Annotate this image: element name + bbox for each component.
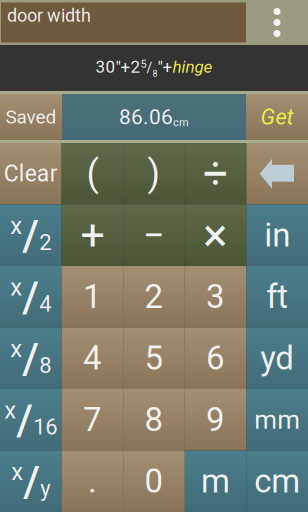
button[interactable]: . (62, 450, 123, 512)
staticText: ) (147, 153, 160, 195)
button[interactable]: x/4 (0, 266, 62, 327)
button[interactable]: 4 (62, 327, 123, 389)
button[interactable]: door width (0, 0, 246, 44)
staticText: mm (254, 404, 300, 435)
staticText: yd (260, 339, 294, 378)
staticText: x/2 (10, 211, 51, 260)
staticText: 6 (206, 339, 225, 378)
button[interactable]: Clear (0, 143, 62, 204)
staticText: ÷ (203, 148, 228, 200)
staticText: + (80, 210, 104, 260)
staticText: m (201, 462, 230, 501)
button[interactable]: + (62, 204, 123, 266)
staticText: 3 (206, 277, 225, 316)
staticText: 1 (83, 277, 102, 316)
button[interactable]: × (185, 204, 246, 266)
staticText: Saved (5, 106, 56, 128)
staticText: Get (260, 104, 293, 130)
staticText: Clear (4, 160, 58, 187)
button[interactable]: mm (246, 389, 308, 450)
staticText: 0 (144, 462, 163, 501)
staticText: × (203, 208, 228, 262)
button[interactable]: x/2 (0, 204, 62, 266)
button[interactable]: 2 (123, 266, 185, 327)
button[interactable]: Saved (0, 94, 62, 140)
button[interactable]: ft (246, 266, 308, 327)
staticText: ( (86, 153, 98, 195)
button[interactable]: 3 (185, 266, 246, 327)
button[interactable]: 0 (123, 450, 185, 512)
staticText: 8 (144, 400, 163, 439)
staticText: 5 (144, 339, 163, 378)
button[interactable]: 8 (123, 389, 185, 450)
button[interactable]: Get (246, 94, 308, 140)
button[interactable]: Backspace (246, 143, 308, 204)
button[interactable]: ( (62, 143, 123, 204)
staticText: x/y (11, 457, 50, 506)
staticText: 30"+25/8"+ (95, 57, 172, 79)
staticText: in (264, 216, 290, 255)
button[interactable]: ) (123, 143, 185, 204)
staticText: x/4 (10, 272, 51, 321)
button[interactable]: x/16 (0, 389, 62, 450)
button[interactable]: More options (246, 0, 308, 45)
staticText: door width (7, 5, 91, 26)
staticText: hinge (172, 57, 212, 77)
button[interactable]: m (185, 450, 246, 512)
button[interactable]: x/8 (0, 327, 62, 389)
staticText: 86.06cm (119, 105, 189, 129)
button[interactable]: − (123, 204, 185, 266)
button[interactable]: cm (246, 450, 308, 512)
staticText: . (88, 462, 97, 501)
button[interactable]: ÷ (185, 143, 246, 204)
staticText: x/8 (10, 334, 51, 383)
staticText: x/16 (4, 395, 57, 444)
staticText: 4 (83, 339, 102, 378)
staticText: ft (266, 277, 288, 316)
staticText: 2 (144, 277, 163, 316)
staticText: − (143, 213, 165, 257)
button[interactable]: 1 (62, 266, 123, 327)
staticText: 7 (83, 400, 102, 439)
staticText: 9 (206, 400, 225, 439)
button[interactable]: in (246, 204, 308, 266)
button[interactable]: 5 (123, 327, 185, 389)
button[interactable]: 7 (62, 389, 123, 450)
button[interactable]: 6 (185, 327, 246, 389)
button[interactable]: 9 (185, 389, 246, 450)
staticText: cm (254, 462, 300, 501)
button[interactable]: yd (246, 327, 308, 389)
button[interactable]: x/y (0, 450, 62, 512)
